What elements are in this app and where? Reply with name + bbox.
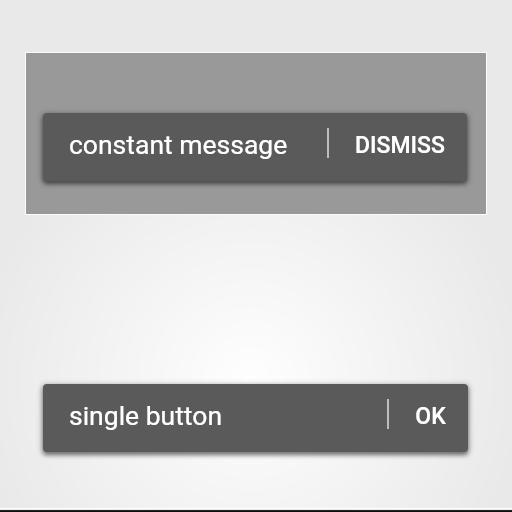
staticText: single button bbox=[69, 400, 387, 431]
staticText: constant message bbox=[69, 129, 327, 160]
button[interactable]: constant message bbox=[43, 113, 467, 181]
button[interactable]: single button bbox=[43, 384, 468, 452]
staticText: OK bbox=[415, 403, 446, 430]
button[interactable]: Dismiss bbox=[329, 113, 467, 181]
button[interactable]: OK bbox=[389, 384, 468, 452]
staticText: DISMISS bbox=[355, 132, 445, 159]
